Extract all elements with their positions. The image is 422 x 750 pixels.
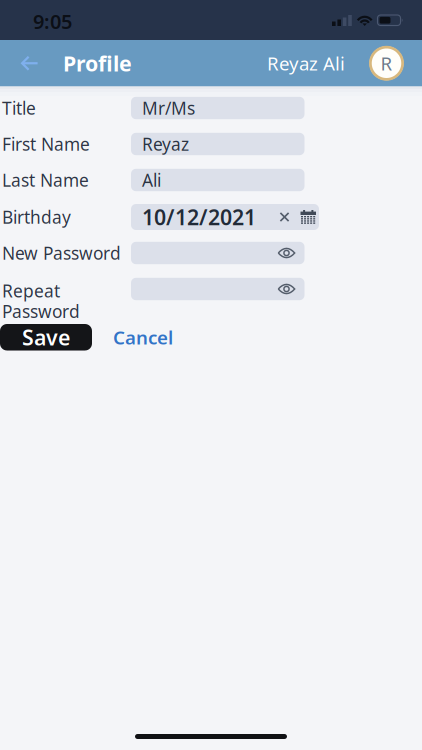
button[interactable]: Password field xyxy=(131,242,304,264)
staticText: Reyaz xyxy=(142,132,189,155)
button[interactable]: Account xyxy=(369,46,404,81)
staticText: Title xyxy=(2,96,36,119)
staticText: R xyxy=(380,51,392,76)
button[interactable]: Save xyxy=(0,324,92,350)
staticText: Birthday xyxy=(2,205,71,228)
button[interactable]: Reyaz xyxy=(131,133,304,155)
staticText: First Name xyxy=(2,132,90,155)
button[interactable]: Password field xyxy=(131,278,304,300)
staticText: New Password xyxy=(2,241,121,264)
button[interactable]: Show password xyxy=(277,284,295,294)
staticText: Cancel xyxy=(113,325,173,350)
button[interactable]: Mr/Ms xyxy=(131,97,304,119)
button[interactable]: 10/12/2021 xyxy=(131,204,319,230)
button[interactable]: Cancel xyxy=(113,325,173,350)
staticText: 9:05 xyxy=(33,8,72,35)
staticText: Last Name xyxy=(2,168,89,191)
staticText: Repeat xyxy=(2,279,60,302)
button[interactable]: Clear date xyxy=(279,212,289,222)
button[interactable]: Back xyxy=(18,50,40,77)
button[interactable]: Pick date xyxy=(300,210,316,224)
button[interactable]: Ali xyxy=(131,169,304,191)
staticText: Password xyxy=(2,300,80,323)
staticText: Reyaz Ali xyxy=(267,51,345,76)
staticText: Save xyxy=(22,323,70,351)
staticText: Profile xyxy=(63,49,132,77)
button[interactable]: Show password xyxy=(277,248,295,258)
staticText: Mr/Ms xyxy=(142,96,195,119)
staticText: 10/12/2021 xyxy=(142,203,256,231)
staticText: Ali xyxy=(142,168,161,191)
